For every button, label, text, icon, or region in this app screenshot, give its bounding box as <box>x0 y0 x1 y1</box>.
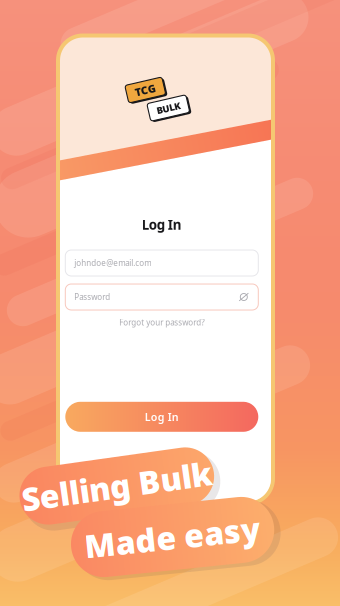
button[interactable]: Forgot your password? <box>119 317 204 328</box>
staticText: Made easy <box>84 516 261 558</box>
staticText: Log In <box>142 216 182 233</box>
staticText: Selling Bulk <box>21 465 213 507</box>
button[interactable]: johndoe@email.com <box>65 250 258 276</box>
button[interactable]: Log In <box>65 402 258 432</box>
staticText: Log In <box>145 410 179 424</box>
staticText: BULK <box>156 102 180 114</box>
staticText: TCG <box>135 83 156 97</box>
button[interactable]: Password <box>65 284 258 310</box>
staticText: johndoe@email.com <box>74 258 151 268</box>
staticText: Forgot your password? <box>119 317 204 328</box>
staticText: Password <box>74 292 110 302</box>
